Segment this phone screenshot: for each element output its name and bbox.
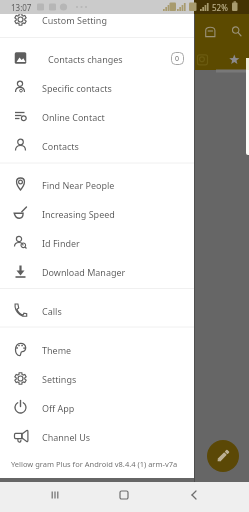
staticText: Specific contacts — [42, 82, 112, 94]
staticText: Id Finder — [42, 237, 80, 249]
button[interactable]: Calls — [0, 296, 194, 325]
staticText: Yellow gram Plus for Android v8.4.4 (1) … — [11, 459, 178, 469]
button[interactable]: New message — [207, 440, 239, 472]
button[interactable]: Recents — [41, 481, 69, 509]
staticText: 0 — [175, 54, 180, 64]
button[interactable]: Increasing Speed — [0, 199, 194, 228]
button[interactable]: Settings — [0, 364, 194, 393]
staticText: Custom Setting — [42, 14, 107, 26]
staticText: Increasing Speed — [42, 208, 115, 220]
button[interactable]: Channel Us — [0, 422, 194, 451]
button[interactable]: Online Contact — [0, 102, 194, 131]
button[interactable]: Contacts changes — [0, 44, 194, 73]
button[interactable]: Specific contacts — [0, 73, 194, 102]
staticText: Settings — [42, 373, 77, 385]
button[interactable]: Back — [180, 481, 208, 509]
staticText: 13:07 — [11, 2, 32, 13]
button[interactable]: Off App — [0, 393, 194, 422]
staticText: Calls — [42, 305, 62, 317]
button[interactable]: Home — [110, 481, 138, 509]
staticText: Find Near People — [42, 179, 115, 191]
staticText: Online Contact — [42, 111, 105, 123]
staticText: Channel Us — [42, 431, 91, 443]
button[interactable]: Download Manager — [0, 257, 194, 286]
staticText: Contacts changes — [48, 53, 123, 65]
staticText: Off App — [42, 402, 75, 414]
button[interactable]: Custom Setting — [0, 5, 194, 34]
button[interactable]: Id Finder — [0, 228, 194, 257]
button[interactable]: Theme — [0, 335, 194, 364]
staticText: Download Manager — [42, 266, 126, 278]
staticText: Contacts — [42, 140, 79, 152]
button[interactable]: Contacts — [0, 131, 194, 160]
button[interactable]: Find Near People — [0, 170, 194, 199]
staticText: Theme — [42, 344, 72, 356]
staticText: 52% — [212, 2, 228, 13]
